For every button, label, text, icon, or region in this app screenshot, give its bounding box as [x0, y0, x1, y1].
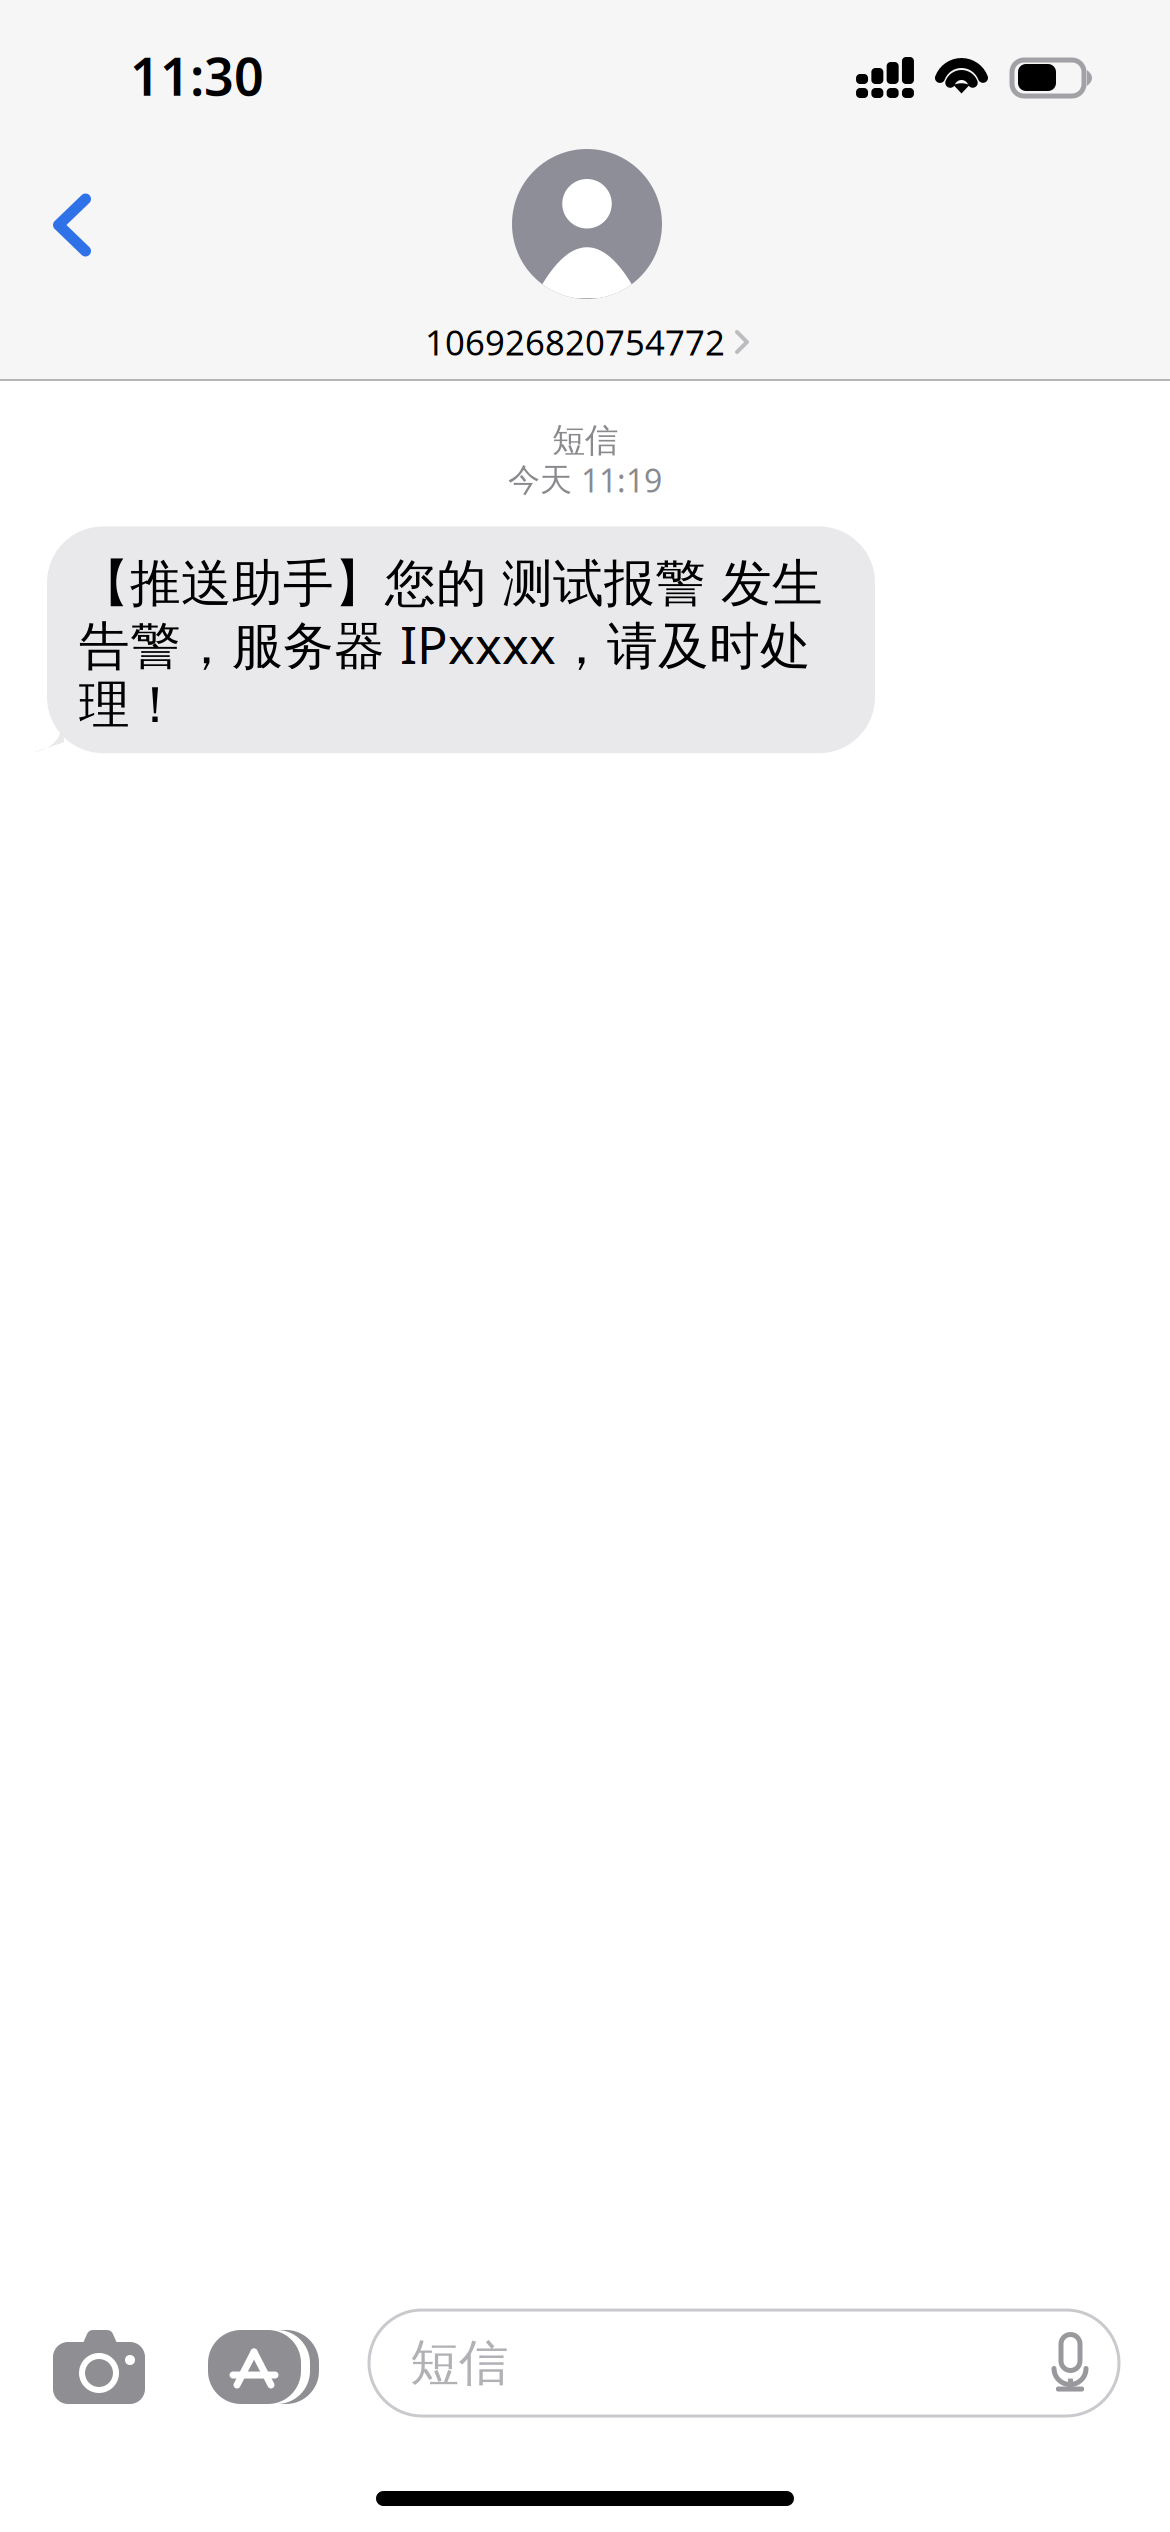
staticText: 今天 [508, 460, 572, 500]
button[interactable]: Camera [53, 2330, 145, 2404]
staticText: 【推送助手】您的 测试报警 发生告警，服务器 IPxxxx，请及时处理！ [79, 552, 823, 736]
staticText: 11:30 [130, 41, 264, 110]
staticText: 短信 [552, 420, 618, 461]
button[interactable]: 短信 [369, 2310, 1119, 2416]
staticText: 106926820754772 [425, 319, 725, 365]
staticText: 11:19 [581, 459, 662, 501]
button[interactable]: App Store [208, 2330, 319, 2404]
button[interactable]: 106926820754772 [307, 149, 867, 365]
staticText: 短信 [410, 2333, 508, 2393]
button[interactable]: Back [12, 165, 132, 285]
